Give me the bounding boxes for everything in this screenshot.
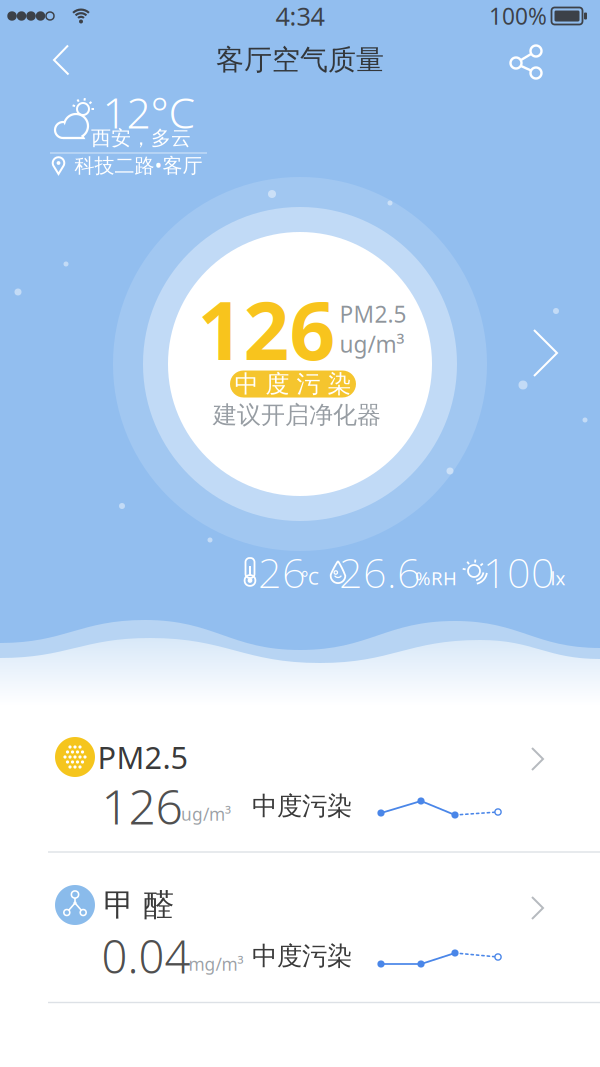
- button[interactable]: PM2.5: [0, 711, 600, 852]
- staticText: 100: [483, 545, 555, 599]
- staticText: 4:34: [275, 0, 324, 33]
- button[interactable]: Location: [49, 152, 202, 178]
- staticText: 中度污染: [252, 940, 352, 971]
- staticText: 客厅空气质量: [216, 43, 384, 77]
- staticText: mg/m³: [188, 952, 243, 975]
- staticText: 中度污染: [252, 790, 352, 821]
- staticText: ug/m³: [181, 802, 231, 825]
- staticText: 100%: [489, 1, 547, 31]
- staticText: 26.6: [339, 545, 421, 599]
- staticText: 科技二路•客厅: [74, 152, 202, 178]
- staticText: 0.04: [101, 926, 190, 986]
- staticText: 12°C: [102, 84, 195, 140]
- staticText: 126: [101, 774, 182, 838]
- staticText: 甲 醛: [103, 886, 174, 924]
- staticText: 中 度 污 染: [234, 369, 351, 399]
- staticText: lx: [550, 566, 565, 590]
- staticText: PM2.5: [339, 299, 406, 329]
- staticText: 26: [258, 545, 306, 599]
- button[interactable]: 甲 醛: [0, 853, 600, 1003]
- staticText: 126: [197, 276, 335, 382]
- staticText: PM2.5: [97, 737, 188, 777]
- staticText: °C: [301, 566, 319, 589]
- staticText: %RH: [415, 566, 457, 590]
- staticText: ug/m³: [339, 329, 404, 359]
- button[interactable]: Next room: [532, 328, 560, 378]
- staticText: 西安，多云: [91, 126, 191, 150]
- button[interactable]: Share: [508, 42, 548, 82]
- staticText: 建议开启净化器: [213, 400, 381, 430]
- button[interactable]: Back: [50, 42, 74, 77]
